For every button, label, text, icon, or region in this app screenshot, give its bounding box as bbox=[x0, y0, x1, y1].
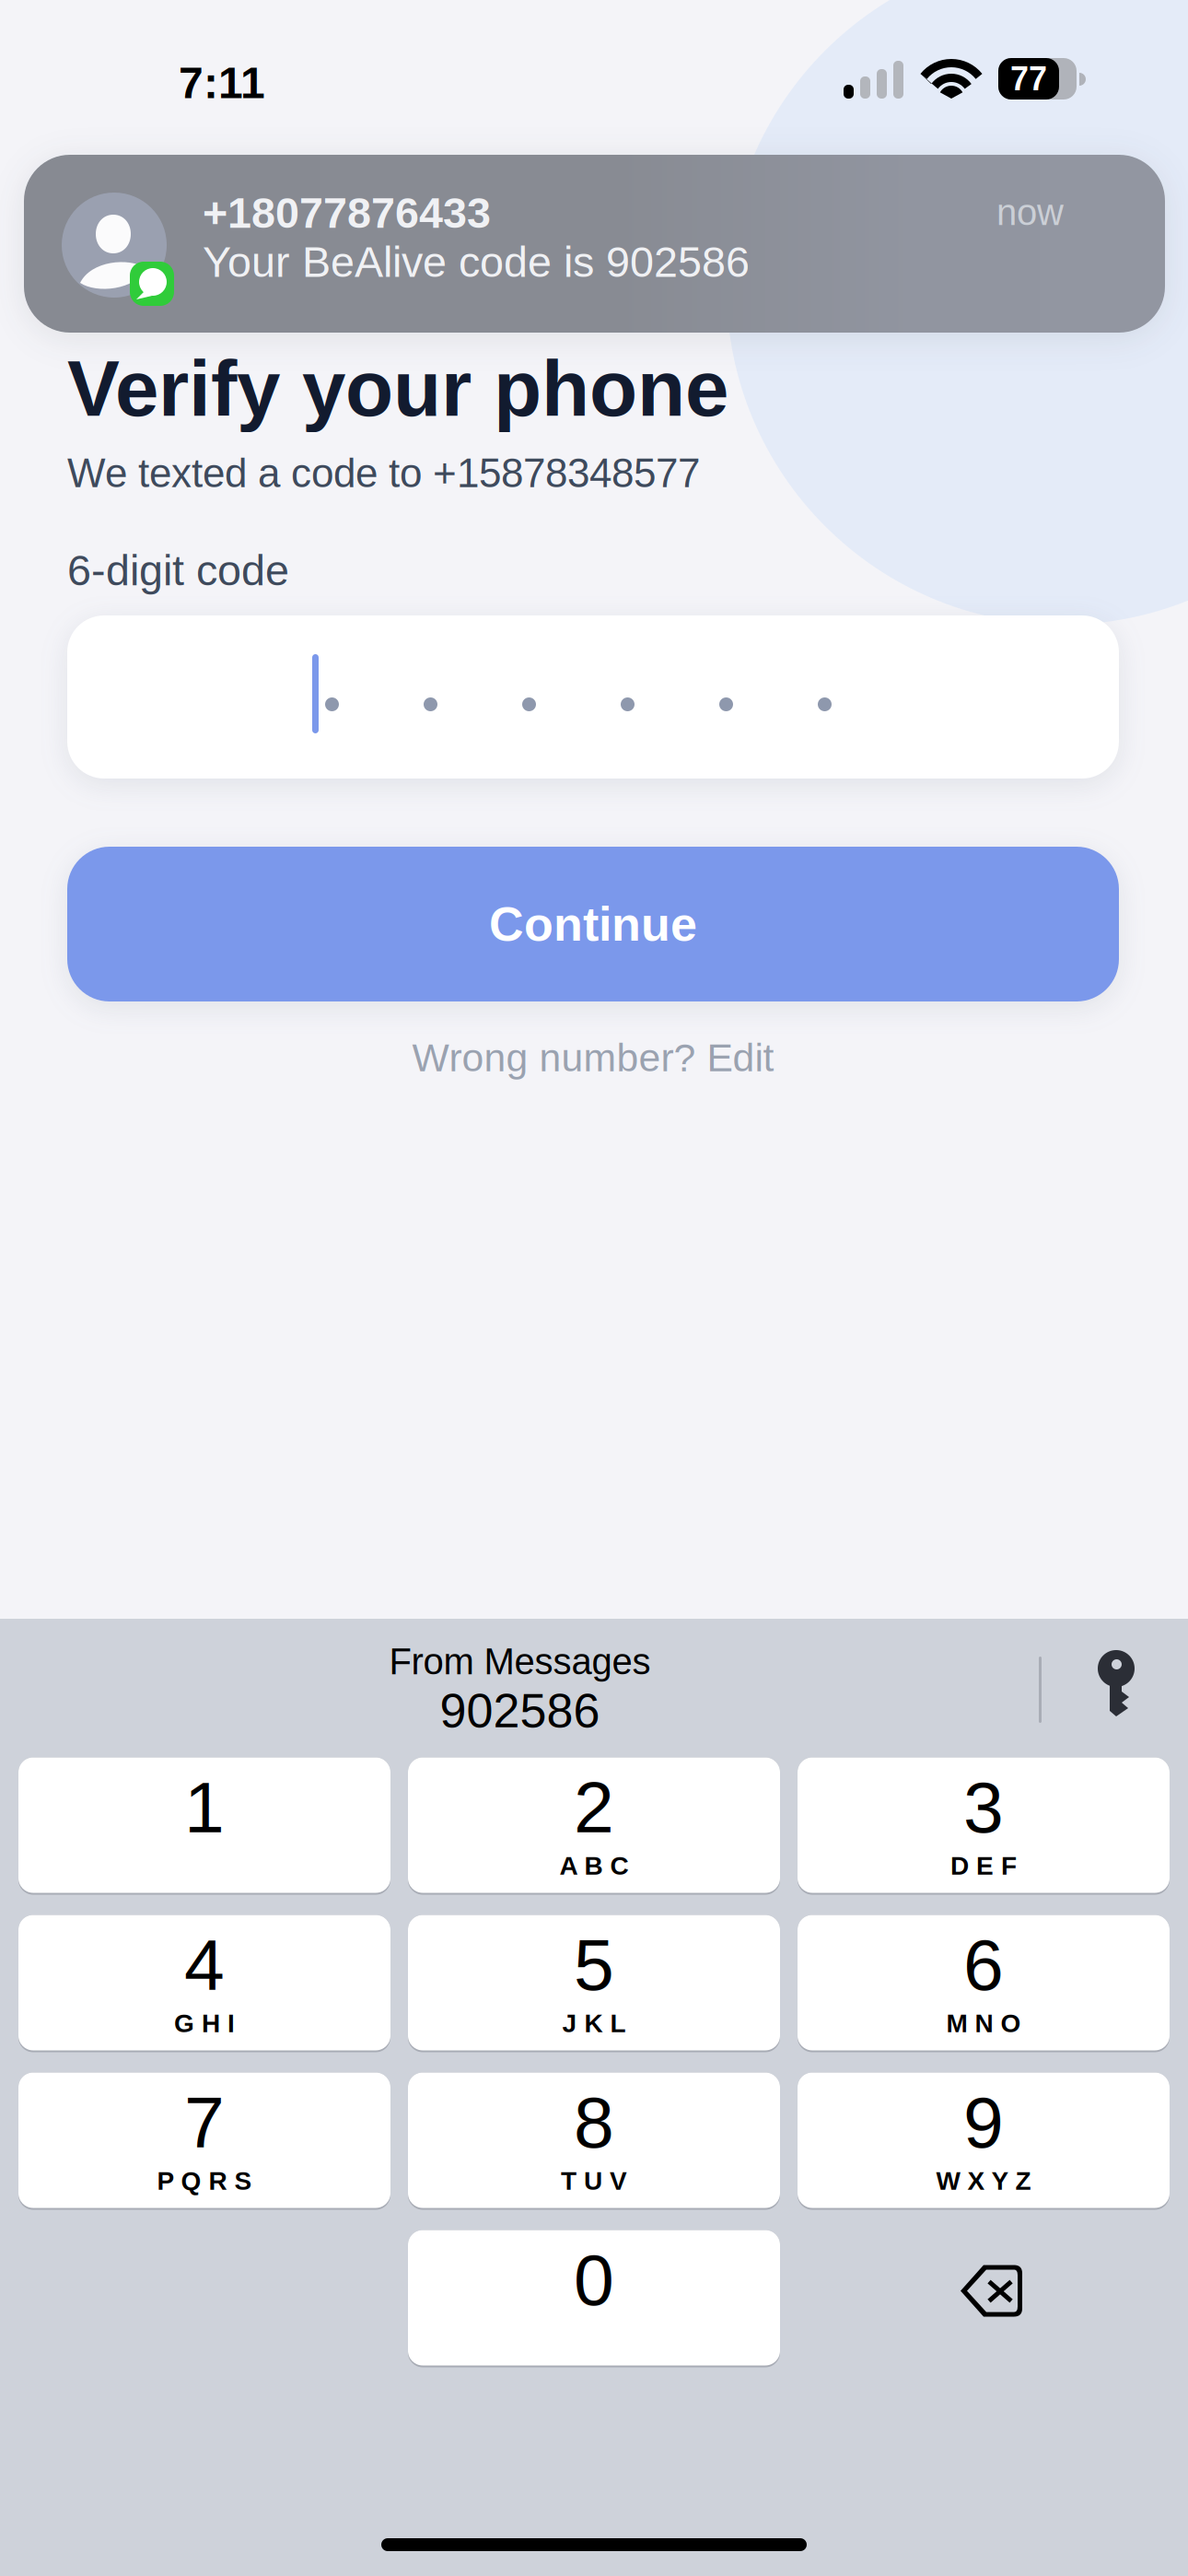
button[interactable]: +18077876433 bbox=[24, 155, 1165, 333]
staticText: 8 bbox=[574, 2082, 614, 2163]
staticText: T U V bbox=[561, 2166, 627, 2195]
staticText: +18077876433 bbox=[203, 189, 491, 237]
staticText: 4 bbox=[184, 1924, 225, 2005]
staticText: A B C bbox=[559, 1851, 629, 1880]
button[interactable]: 1 bbox=[18, 1757, 390, 1895]
staticText: P Q R S bbox=[157, 2166, 252, 2195]
staticText: Verify your phone bbox=[67, 345, 728, 432]
staticText: 3 bbox=[963, 1767, 1004, 1848]
staticText: 902586 bbox=[440, 1684, 600, 1738]
button[interactable]: 9 bbox=[798, 2073, 1170, 2210]
staticText: J K L bbox=[562, 2009, 626, 2038]
button[interactable]: From Messages bbox=[0, 1619, 1040, 1760]
staticText: 5 bbox=[574, 1924, 614, 2005]
staticText: 77 bbox=[1010, 60, 1047, 97]
staticText: Wrong number? Edit bbox=[412, 1036, 774, 1080]
staticText: 6 bbox=[963, 1924, 1004, 2005]
button[interactable]: 6 bbox=[798, 1915, 1170, 2052]
staticText: M N O bbox=[946, 2009, 1021, 2038]
button[interactable]: Wrong number? Edit bbox=[67, 1028, 1119, 1087]
button[interactable]: Continue bbox=[67, 847, 1119, 1001]
button[interactable]: Passwords bbox=[1076, 1633, 1160, 1734]
button[interactable]: 0 bbox=[408, 2230, 780, 2367]
button[interactable]: 7 bbox=[18, 2073, 390, 2210]
button[interactable]: 3 bbox=[798, 1757, 1170, 1895]
button[interactable]: 2 bbox=[408, 1757, 780, 1895]
staticText: Your BeAlive code is 902586 bbox=[203, 238, 750, 286]
staticText: 1 bbox=[184, 1767, 225, 1848]
staticText: 2 bbox=[574, 1767, 614, 1848]
staticText: Continue bbox=[489, 897, 697, 951]
staticText: 0 bbox=[574, 2239, 614, 2320]
button[interactable]: 8 bbox=[408, 2073, 780, 2210]
button[interactable]: 4 bbox=[18, 1915, 390, 2052]
staticText: We texted a code to +15878348577 bbox=[67, 451, 700, 496]
staticText: now bbox=[996, 192, 1064, 233]
staticText: W X Y Z bbox=[936, 2166, 1031, 2195]
staticText: From Messages bbox=[389, 1641, 651, 1682]
button[interactable]: Delete bbox=[798, 2230, 1170, 2367]
staticText: G H I bbox=[174, 2009, 235, 2038]
staticText: 7 bbox=[184, 2082, 225, 2163]
staticText: D E F bbox=[950, 1851, 1017, 1880]
staticText: 6-digit code bbox=[67, 546, 289, 594]
button[interactable]: 5 bbox=[408, 1915, 780, 2052]
button[interactable] bbox=[67, 615, 1119, 779]
staticText: 7:11 bbox=[179, 58, 264, 107]
staticText: 9 bbox=[963, 2082, 1004, 2163]
